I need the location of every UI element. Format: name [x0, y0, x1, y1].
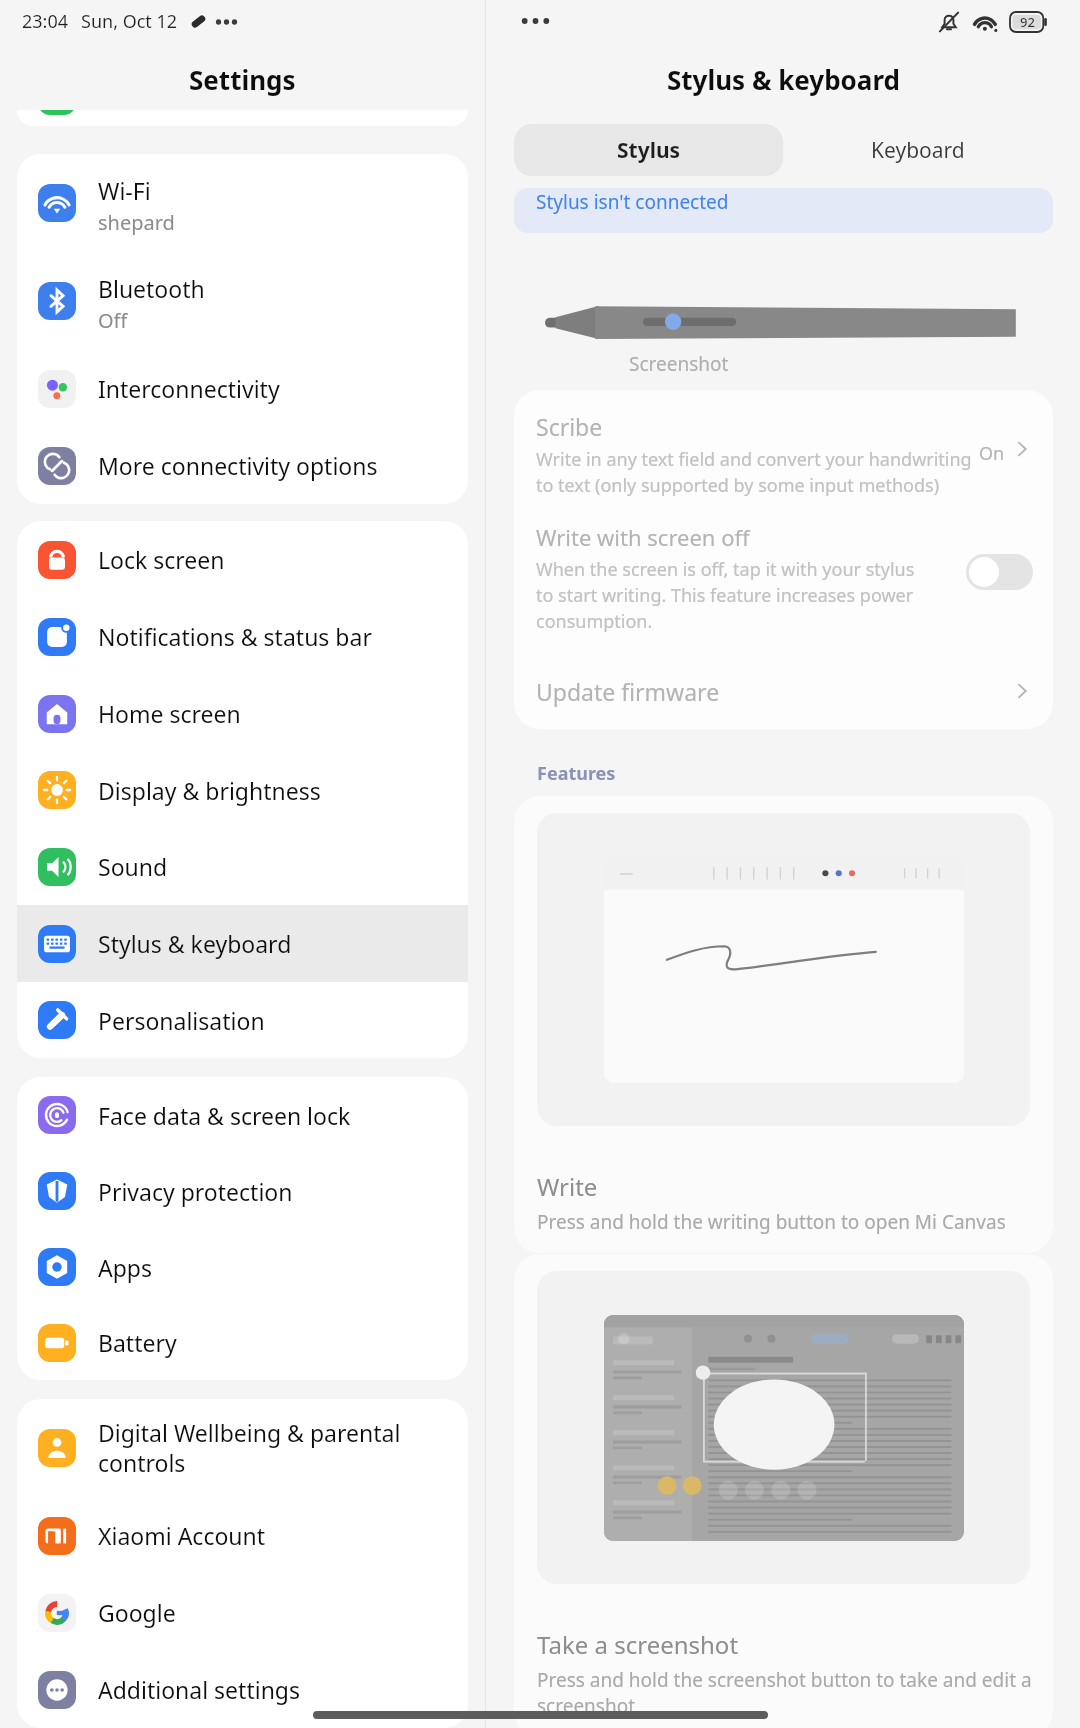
button[interactable]: Bluetooth	[17, 252, 468, 350]
button[interactable]: Home screen	[17, 675, 468, 752]
staticText: Privacy protection	[98, 1176, 293, 1207]
button[interactable]: Display & brightness	[17, 752, 468, 828]
staticText: On	[979, 441, 1005, 466]
button[interactable]: Wi-Fi	[17, 154, 468, 252]
staticText: Apps	[98, 1252, 153, 1283]
button[interactable]: Sound	[17, 828, 468, 905]
staticText: 23:04	[22, 9, 69, 34]
staticText: Battery	[98, 1327, 177, 1358]
button[interactable]: Battery	[17, 1305, 468, 1380]
staticText: Features	[537, 761, 616, 786]
staticText: More connectivity options	[98, 450, 378, 481]
button[interactable]: Additional settings	[17, 1651, 468, 1728]
staticText: Keyboard	[871, 136, 965, 165]
staticText: Xiaomi Account	[98, 1520, 266, 1551]
staticText: Stylus & keyboard	[667, 62, 900, 97]
staticText: Stylus isn't connected	[536, 189, 729, 215]
staticText: Personalisation	[98, 1005, 265, 1036]
button[interactable]: Write	[514, 796, 1053, 1253]
staticText: Wi-Fi	[98, 175, 151, 206]
staticText: Bluetooth	[98, 273, 205, 304]
staticText: shepard	[98, 209, 175, 236]
staticText: Press and hold the writing button to ope…	[537, 1209, 1006, 1235]
button[interactable]: Take a screenshot	[514, 1254, 1053, 1728]
staticText: Stylus & keyboard	[98, 928, 292, 959]
button[interactable]: Google	[17, 1574, 468, 1651]
button[interactable]: Xiaomi Account	[17, 1497, 468, 1574]
button[interactable]: Privacy protection	[17, 1153, 468, 1229]
staticText: Write in any text field and convert your…	[536, 447, 975, 498]
staticText: Write with screen off	[536, 522, 750, 552]
staticText: When the screen is off, tap it with your…	[536, 557, 934, 634]
button[interactable]: Apps	[17, 1229, 468, 1305]
button[interactable]: Stylus & keyboard	[17, 905, 468, 982]
button[interactable]: Personalisation	[17, 982, 468, 1058]
button[interactable]: More options	[514, 8, 557, 34]
button[interactable]: Keyboard	[783, 124, 1053, 176]
staticText: 92	[1020, 13, 1035, 31]
staticText: Take a screenshot	[537, 1628, 739, 1661]
staticText: Settings	[189, 62, 296, 97]
staticText: Notifications & status bar	[98, 621, 372, 652]
staticText: Sound	[98, 851, 168, 882]
button[interactable]: Lock screen	[17, 521, 468, 598]
staticText: Additional settings	[98, 1674, 301, 1705]
button[interactable]: Face data & screen lock	[17, 1077, 468, 1153]
staticText: Interconnectivity	[98, 373, 280, 404]
staticText: Scribe	[536, 411, 603, 442]
button[interactable]: More connectivity options	[17, 427, 468, 504]
staticText: Home screen	[98, 698, 241, 729]
staticText: Press and hold the screenshot button to …	[537, 1667, 1032, 1719]
button[interactable]: Interconnectivity	[17, 350, 468, 427]
staticText: Digital Wellbeing & parental controls	[98, 1417, 401, 1479]
button[interactable]: Update firmware	[514, 653, 1053, 729]
staticText: Write	[537, 1170, 598, 1203]
staticText: Screenshot	[629, 351, 729, 377]
button[interactable]: Digital Wellbeing & parental controls	[17, 1399, 468, 1497]
button[interactable]: Stylus	[514, 124, 783, 176]
staticText: Sun, Oct 12	[81, 9, 178, 34]
button[interactable]: Notifications & status bar	[17, 598, 468, 675]
staticText: Lock screen	[98, 544, 225, 575]
button[interactable]: Write with screen off toggle	[966, 554, 1033, 590]
staticText: Face data & screen lock	[98, 1100, 351, 1131]
staticText: Stylus	[617, 136, 681, 165]
staticText: Google	[98, 1597, 176, 1628]
staticText: Update firmware	[536, 676, 1011, 707]
staticText: Display & brightness	[98, 775, 321, 806]
button[interactable]: Scribe	[514, 390, 1053, 512]
staticText: Off	[98, 307, 128, 334]
